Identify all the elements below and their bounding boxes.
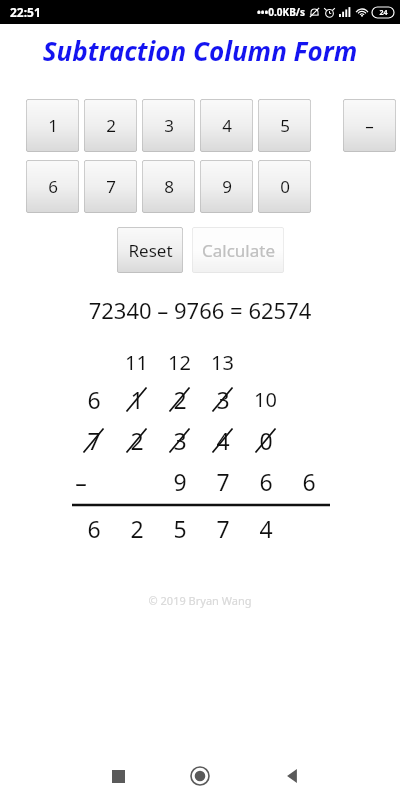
button[interactable]: 6	[26, 160, 79, 213]
staticText: Subtraction Column Form	[0, 33, 400, 68]
staticText: 6	[48, 175, 58, 198]
staticText: 7	[216, 513, 230, 544]
staticText: 4	[259, 513, 273, 544]
staticText: 2	[106, 114, 116, 137]
button[interactable]: Home	[182, 758, 218, 794]
staticText: 1	[48, 114, 58, 137]
staticText: 11	[125, 349, 148, 376]
staticText: 0	[259, 425, 273, 456]
staticText: 2	[173, 384, 187, 415]
button[interactable]: Calculate	[192, 227, 284, 273]
button[interactable]: 5	[258, 99, 311, 152]
staticText: 0	[280, 175, 290, 198]
staticText: 3	[173, 425, 187, 456]
staticText: •••0.0KB/s	[257, 5, 305, 19]
staticText: 7	[106, 175, 116, 198]
staticText: 4	[222, 114, 232, 137]
button[interactable]: Recent apps	[100, 758, 136, 794]
button[interactable]: 1	[26, 99, 79, 152]
staticText: 5	[173, 513, 187, 544]
staticText: 7	[87, 425, 101, 456]
staticText: –	[365, 114, 374, 137]
staticText: 3	[164, 114, 174, 137]
staticText: 6	[302, 466, 316, 497]
button[interactable]: Back	[274, 758, 310, 794]
button[interactable]: 8	[142, 160, 195, 213]
staticText: 6	[87, 513, 101, 544]
staticText: –	[75, 466, 87, 497]
staticText: 3	[216, 384, 230, 415]
staticText: 2	[130, 425, 144, 456]
staticText: 7	[216, 466, 230, 497]
staticText: 6	[259, 466, 273, 497]
staticText: 10	[254, 386, 277, 413]
staticText: 1	[130, 384, 144, 415]
staticText: 5	[280, 114, 290, 137]
staticText: 22:51	[10, 4, 41, 20]
staticText: 2	[130, 513, 144, 544]
staticText: 24	[379, 8, 388, 18]
button[interactable]: 9	[200, 160, 253, 213]
staticText: 9	[222, 175, 232, 198]
staticText: 72340 – 9766 = 62574	[0, 295, 400, 325]
staticText: 12	[168, 349, 191, 376]
button[interactable]: 0	[258, 160, 311, 213]
staticText: 8	[164, 175, 174, 198]
staticText: 13	[211, 349, 234, 376]
button[interactable]: 4	[200, 99, 253, 152]
staticText: 4	[216, 425, 230, 456]
staticText: Calculate	[202, 239, 275, 262]
button[interactable]: 7	[84, 160, 137, 213]
button[interactable]: Reset	[117, 227, 183, 273]
staticText: 9	[173, 466, 187, 497]
button[interactable]: 3	[142, 99, 195, 152]
button[interactable]: –	[343, 99, 396, 152]
staticText: Reset	[128, 239, 173, 262]
staticText: 6	[87, 384, 101, 415]
button[interactable]: 2	[84, 99, 137, 152]
staticText: © 2019 Bryan Wang	[0, 593, 400, 608]
